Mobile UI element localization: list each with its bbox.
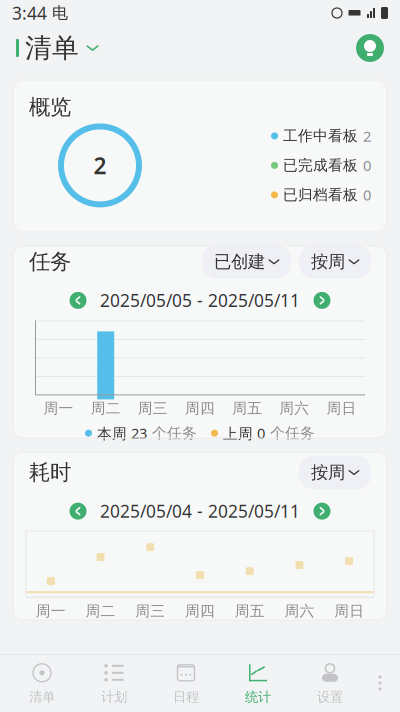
button[interactable]: 按周 (299, 245, 371, 278)
staticText: 概览 (29, 94, 71, 120)
staticText: 按周 (311, 462, 345, 483)
staticText: 周三 (138, 399, 168, 417)
button[interactable]: 计划 (78, 657, 150, 709)
staticText: 周三 (135, 602, 165, 620)
staticText: 周一 (36, 602, 66, 620)
button[interactable]: 设置 (294, 657, 366, 709)
button[interactable]: 清单 (12, 26, 102, 70)
button[interactable]: 下一周 (310, 288, 334, 312)
staticText: 2 (93, 150, 106, 180)
staticText: 周四 (185, 399, 215, 417)
staticText: 耗时 (29, 459, 71, 486)
button[interactable]: 上一周 (66, 288, 90, 312)
staticText: 已创建 (214, 251, 265, 272)
staticText: 2025/05/05 - 2025/05/11 (100, 289, 300, 312)
staticText: 个任务 (270, 424, 315, 442)
staticText: 清单 (25, 32, 79, 64)
staticText: 工作中看板 (283, 127, 358, 145)
staticText: 周五 (232, 399, 262, 417)
staticText: 电 (47, 3, 68, 23)
staticText: 周六 (284, 602, 314, 620)
staticText: 日程 (173, 689, 199, 705)
staticText: 周日 (326, 399, 356, 417)
staticText: 上周 0 (223, 423, 265, 443)
staticText: 按周 (311, 251, 345, 272)
staticText: 任务 (29, 249, 71, 275)
staticText: 0 (363, 185, 371, 205)
staticText: 设置 (317, 689, 343, 705)
button[interactable]: 统计 (222, 657, 294, 709)
button[interactable]: 提示 (352, 30, 388, 66)
button[interactable]: 已创建 (202, 245, 291, 278)
staticText: 已完成看板 (283, 156, 358, 174)
staticText: 3:44 (12, 1, 47, 24)
button[interactable]: 日程 (150, 657, 222, 709)
staticText: 周四 (185, 602, 215, 620)
button[interactable]: 下一周 (310, 499, 334, 523)
staticText: 本周 23 (97, 423, 147, 443)
staticText: 0 (363, 156, 371, 175)
staticText: 周二 (91, 399, 121, 417)
button[interactable]: 上一周 (66, 499, 90, 523)
staticText: 周日 (334, 602, 364, 620)
staticText: 清单 (29, 689, 55, 705)
staticText: 周六 (279, 399, 309, 417)
staticText: 周五 (235, 602, 265, 620)
staticText: 已归档看板 (283, 186, 358, 204)
button[interactable]: 按周 (299, 456, 371, 489)
staticText: 统计 (245, 689, 271, 705)
button[interactable]: 清单 (6, 657, 78, 709)
staticText: 个任务 (152, 424, 197, 442)
staticText: 周一 (44, 399, 74, 417)
button[interactable]: 更多 (366, 655, 394, 711)
staticText: 2 (363, 126, 371, 146)
staticText: 计划 (101, 689, 127, 705)
staticText: 周二 (86, 602, 116, 620)
staticText: 2025/05/04 - 2025/05/11 (100, 500, 300, 523)
